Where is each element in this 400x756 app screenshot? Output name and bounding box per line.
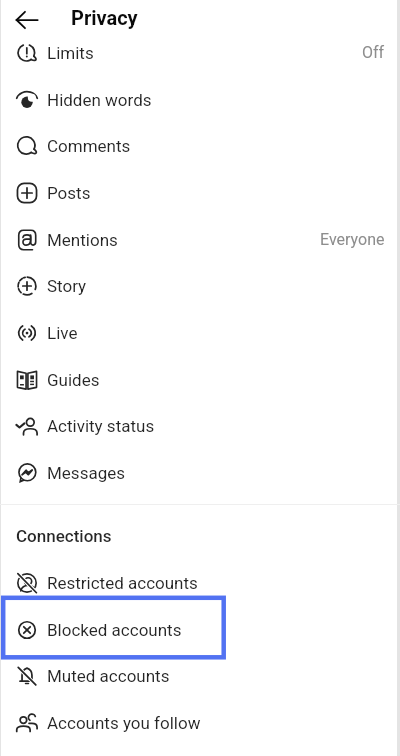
button[interactable]: Story (0, 262, 400, 309)
staticText: Live (47, 323, 78, 343)
staticText: Guides (47, 370, 100, 390)
staticText: Limits (47, 43, 94, 63)
button[interactable]: Posts (0, 169, 400, 216)
staticText: Everyone (320, 230, 385, 249)
staticText: Accounts you follow (47, 713, 201, 733)
staticText: Muted accounts (47, 666, 170, 686)
button[interactable]: Messages (0, 449, 400, 496)
staticText: Hidden words (47, 90, 152, 110)
staticText: Activity status (47, 416, 155, 436)
button[interactable]: Blocked accounts (0, 606, 400, 653)
button[interactable]: Mentions (0, 216, 400, 263)
staticText: Posts (47, 183, 91, 203)
staticText: Messages (47, 463, 125, 483)
staticText: Story (47, 276, 87, 296)
staticText: Off (362, 43, 385, 62)
button[interactable]: Comments (0, 122, 400, 169)
staticText: Restricted accounts (47, 573, 198, 593)
staticText: Comments (47, 136, 131, 156)
button[interactable]: Restricted accounts (0, 559, 400, 606)
button[interactable]: Back (5, 0, 49, 42)
staticText: Privacy (71, 6, 138, 29)
button[interactable]: Hidden words (0, 76, 400, 123)
staticText: Connections (16, 526, 112, 546)
staticText: Mentions (47, 230, 118, 250)
button[interactable]: Activity status (0, 402, 400, 449)
button[interactable]: Live (0, 309, 400, 356)
button[interactable]: Accounts you follow (0, 699, 400, 746)
button[interactable]: Guides (0, 356, 400, 403)
button[interactable]: Limits (0, 29, 400, 76)
staticText: Blocked accounts (47, 620, 182, 640)
button[interactable]: Muted accounts (0, 652, 400, 699)
